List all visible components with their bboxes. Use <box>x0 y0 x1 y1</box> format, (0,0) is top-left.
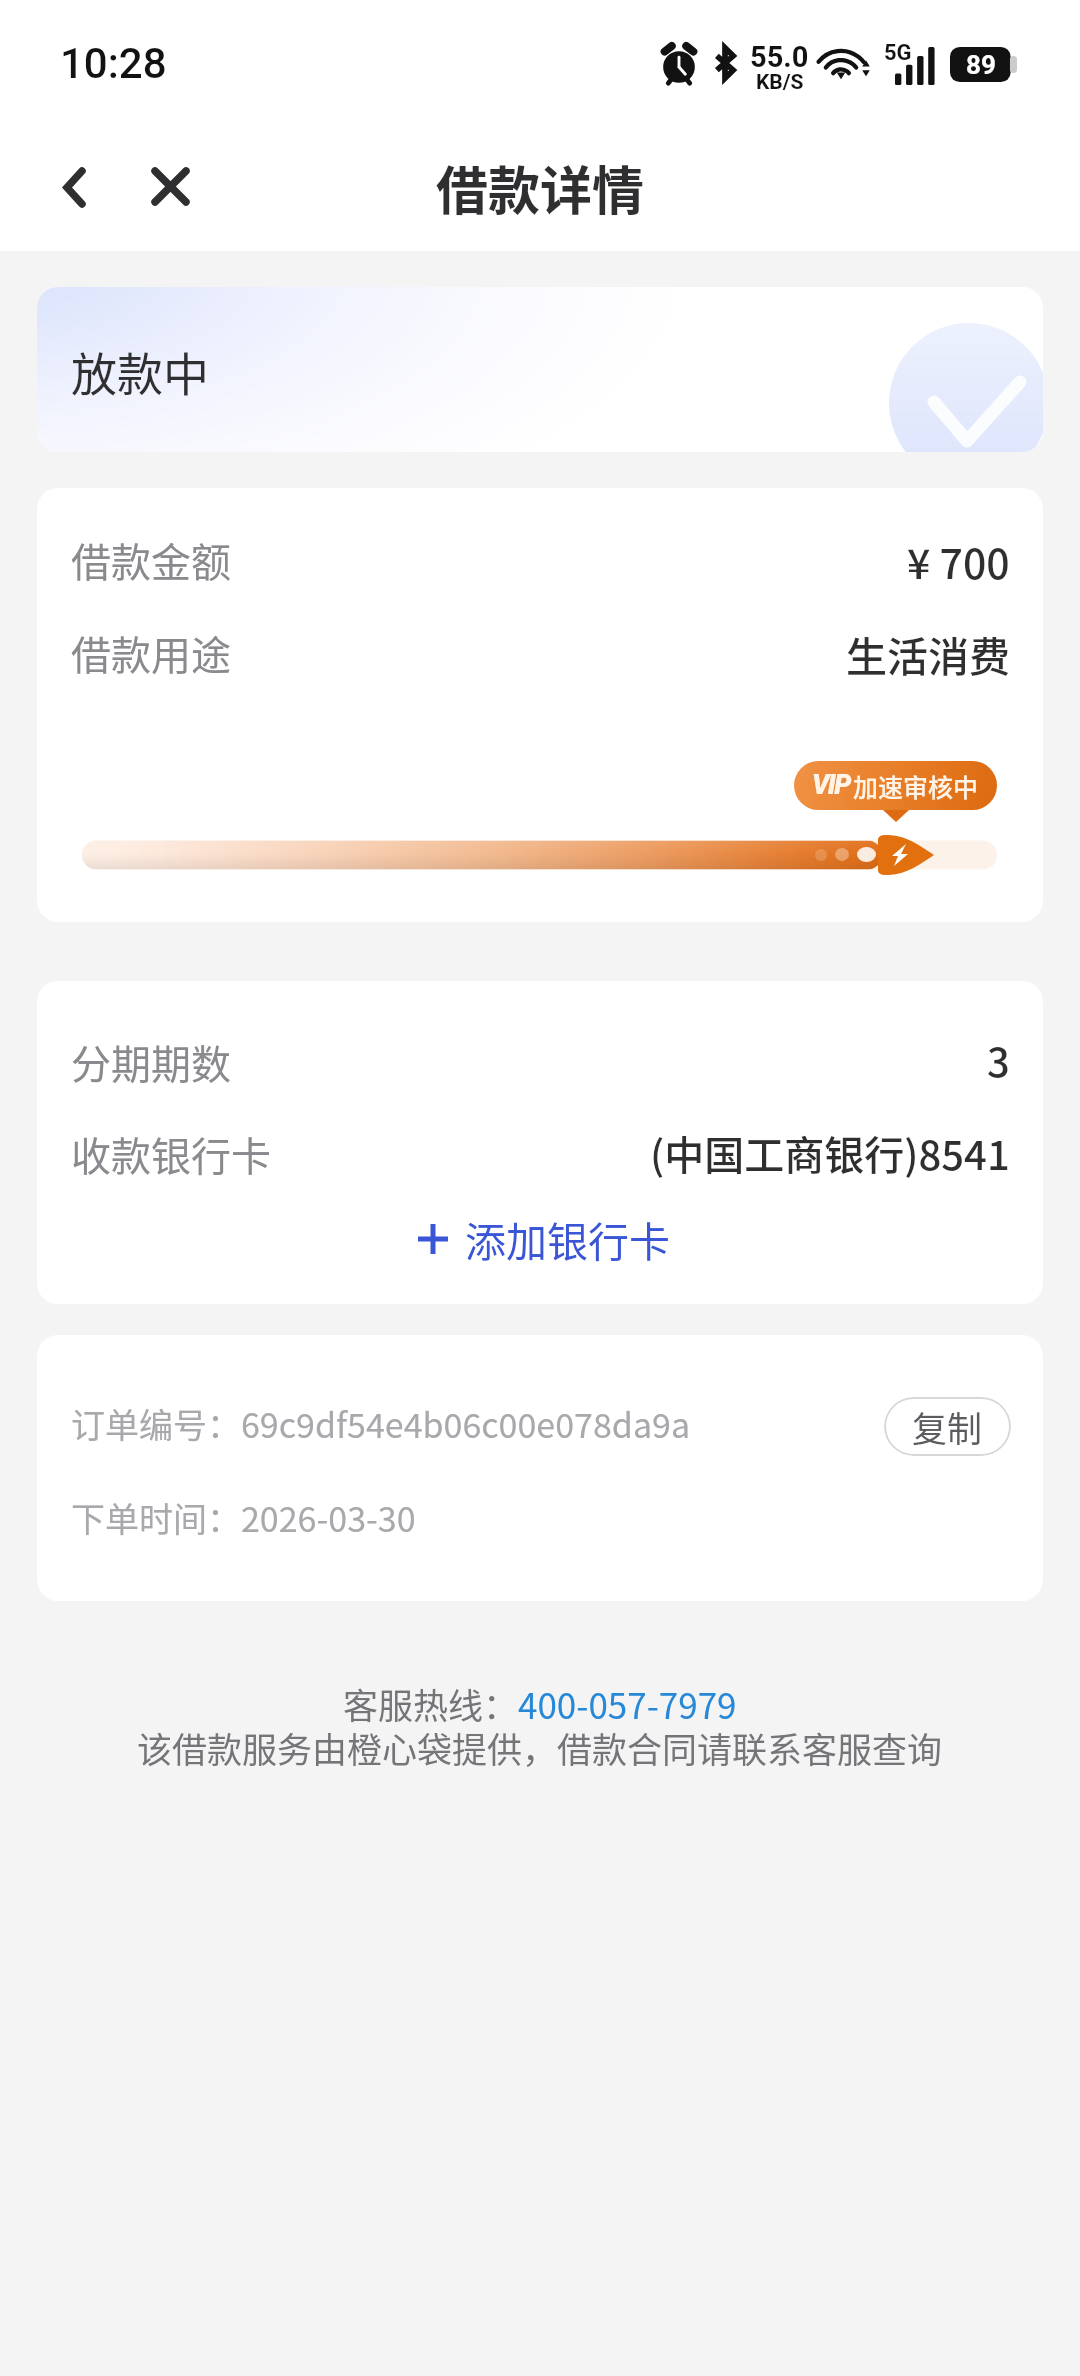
staticText: 55.0 <box>750 40 809 74</box>
staticText: 3 <box>987 1031 1010 1087</box>
staticText: 10:28 <box>60 39 167 88</box>
staticText: 加速审核中 <box>853 768 979 804</box>
staticText: ¥ 700 <box>907 531 1010 587</box>
button[interactable]: Back <box>31 144 117 230</box>
staticText: (中国工商银行)8541 <box>650 1124 1010 1180</box>
staticText: 添加银行卡 <box>465 1209 670 1268</box>
staticText: VIP <box>812 769 850 801</box>
button[interactable]: 收款银行卡 <box>37 1124 1043 1180</box>
staticText: 借款用途 <box>71 624 231 680</box>
staticText: 复制 <box>912 1401 983 1452</box>
button[interactable]: 放款中 <box>37 287 1043 452</box>
staticText: 收款银行卡 <box>71 1125 271 1181</box>
button[interactable]: 借款用途 <box>37 623 1043 679</box>
staticText: 放款中 <box>71 338 209 405</box>
button[interactable]: 客服热线：400-057-7979 <box>343 1678 737 1729</box>
button[interactable]: 添加银行卡 <box>404 1203 684 1274</box>
staticText: 5G <box>884 40 912 66</box>
button[interactable]: 借款金额 <box>37 530 1043 586</box>
button[interactable]: Close <box>127 143 213 229</box>
staticText: 借款详情 <box>436 150 645 225</box>
staticText: 借款金额 <box>71 531 231 587</box>
staticText: 89 <box>966 50 996 80</box>
staticText: 该借款服务由橙心袋提供，借款合同请联系客服查询 <box>137 1722 943 1773</box>
staticText: 下单时间：2026-03-30 <box>71 1493 416 1542</box>
button[interactable]: 分期期数 <box>37 1032 1043 1088</box>
staticText: KB/S <box>756 70 804 95</box>
staticText: 分期期数 <box>71 1033 231 1089</box>
staticText: 订单编号：69c9df54e4b06c00e078da9a <box>71 1399 691 1448</box>
staticText: 生活消费 <box>846 624 1010 680</box>
button[interactable]: 复制 <box>884 1397 1011 1456</box>
